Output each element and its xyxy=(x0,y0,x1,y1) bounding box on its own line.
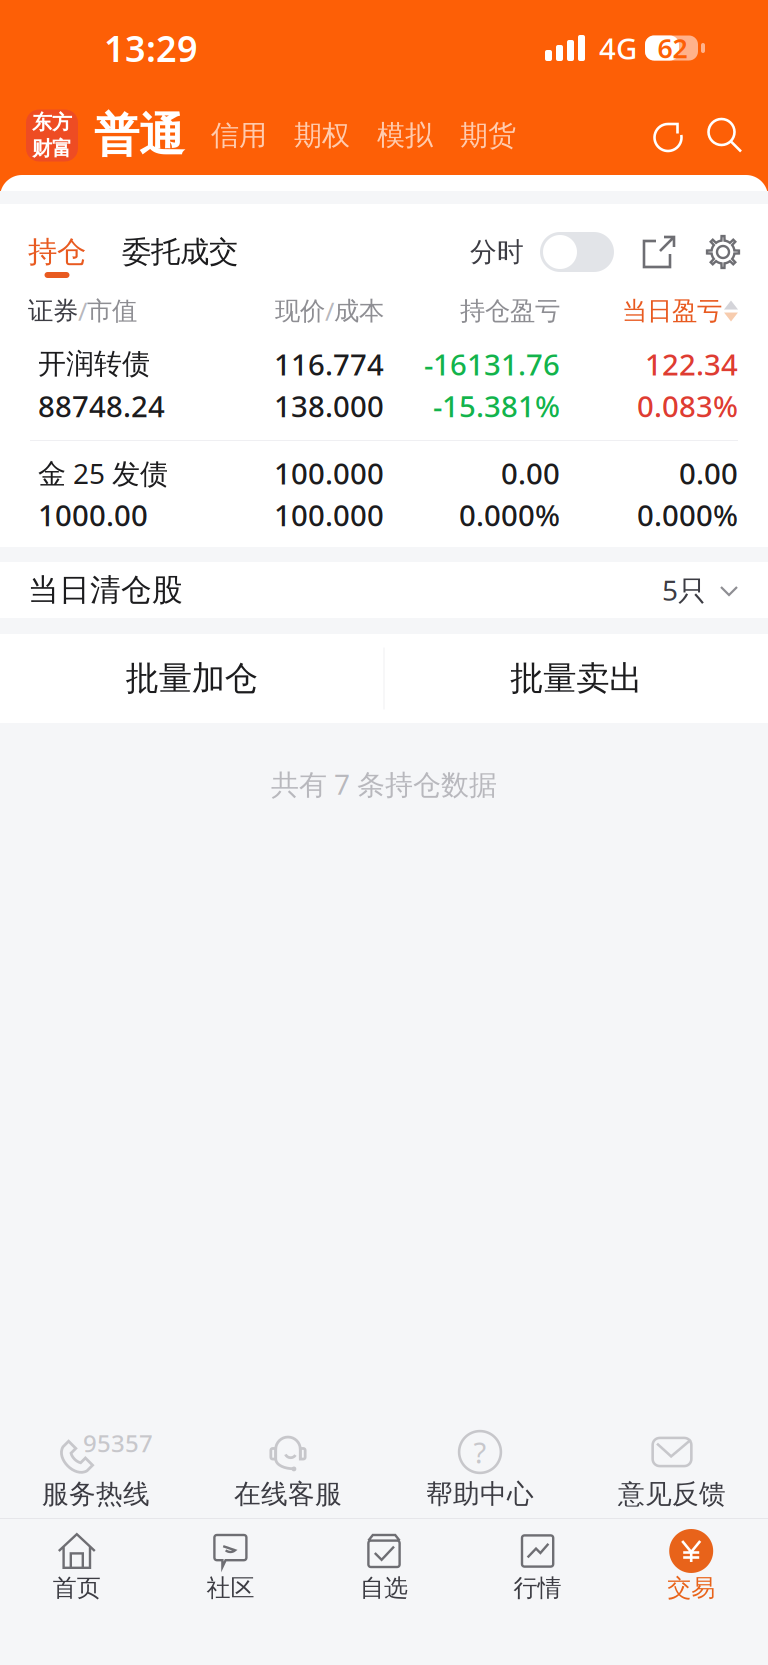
staticText: 自选 xyxy=(360,1573,408,1603)
staticText: 市值 xyxy=(87,295,137,327)
staticText: 行情 xyxy=(514,1573,562,1603)
staticText: 13:29 xyxy=(104,24,198,72)
staticText: 现价 xyxy=(275,295,325,327)
staticText: / xyxy=(325,294,334,328)
staticText: ? xyxy=(473,1432,486,1471)
staticText: 88748.24 xyxy=(38,386,165,425)
staticText: 首页 xyxy=(53,1573,101,1603)
button[interactable]: 交易 xyxy=(614,1525,768,1607)
button[interactable]: 社区 xyxy=(154,1525,307,1607)
staticText: -15.381% xyxy=(433,386,560,425)
staticText: 5只 xyxy=(662,571,706,609)
staticText: 138.000 xyxy=(274,386,384,425)
staticText: 共有 7 条持仓数据 xyxy=(271,765,497,803)
button[interactable]: 批量卖出 xyxy=(384,634,768,723)
staticText: 在线客服 xyxy=(234,1477,342,1511)
button[interactable]: 行情 xyxy=(461,1525,614,1607)
button[interactable]: 金 25 发债 xyxy=(0,441,768,547)
staticText: 100.000 xyxy=(274,453,384,492)
staticText: 当日盈亏 xyxy=(622,295,722,327)
staticText: 期货 xyxy=(460,118,516,153)
staticText: 意见反馈 xyxy=(618,1477,726,1511)
staticText: 当日清仓股 xyxy=(28,571,183,609)
button[interactable]: 批量加仓 xyxy=(0,634,383,723)
button[interactable]: Refresh xyxy=(650,116,686,154)
staticText: 4G xyxy=(599,28,637,67)
staticText: 帮助中心 xyxy=(426,1477,534,1511)
staticText: / xyxy=(78,294,87,328)
button[interactable]: 95357 xyxy=(0,1418,192,1518)
button[interactable]: Search xyxy=(686,116,744,154)
button[interactable]: 持仓 xyxy=(0,214,86,278)
staticText: 122.34 xyxy=(645,344,738,383)
button[interactable]: 自选 xyxy=(307,1525,461,1607)
staticText: 信用 xyxy=(211,118,267,153)
staticText: 期权 xyxy=(294,118,350,153)
staticText: 财富 xyxy=(32,136,72,161)
staticText: 95357 xyxy=(83,1427,153,1459)
button[interactable]: Intraday toggle xyxy=(524,214,614,272)
staticText: 0.000% xyxy=(637,495,738,534)
staticText: 成本 xyxy=(334,295,384,327)
staticText: 0.083% xyxy=(637,386,738,425)
button[interactable]: 委托成交 xyxy=(86,214,238,272)
staticText: 东方 xyxy=(32,110,72,135)
staticText: 持仓 xyxy=(28,233,86,270)
staticText: 开润转债 xyxy=(38,346,150,382)
button[interactable]: 当日清仓股 xyxy=(0,562,768,618)
staticText: -16131.76 xyxy=(424,344,560,383)
staticText: 证券 xyxy=(28,295,78,327)
staticText: 模拟 xyxy=(377,118,433,153)
staticText: 普通 xyxy=(94,107,184,164)
staticText: 金 25 发债 xyxy=(38,454,168,492)
staticText: 批量卖出 xyxy=(510,657,642,699)
staticText: 服务热线 xyxy=(42,1477,150,1511)
staticText: 社区 xyxy=(206,1573,254,1603)
button[interactable]: ? xyxy=(384,1418,576,1518)
button[interactable]: 首页 xyxy=(0,1525,154,1607)
button[interactable]: Settings xyxy=(678,214,742,271)
staticText: 持仓盈亏 xyxy=(460,295,560,327)
staticText: 委托成交 xyxy=(122,233,238,270)
staticText: 0.000% xyxy=(459,495,560,534)
button[interactable]: 开润转债 xyxy=(0,330,768,440)
button[interactable]: Share xyxy=(614,214,678,271)
staticText: 116.774 xyxy=(274,344,384,383)
staticText: 交易 xyxy=(667,1573,715,1603)
staticText: 批量加仓 xyxy=(126,657,258,699)
button[interactable]: 在线客服 xyxy=(192,1418,384,1518)
staticText: 100.000 xyxy=(274,495,384,534)
staticText: 0.00 xyxy=(501,453,560,492)
staticText: 0.00 xyxy=(679,453,738,492)
staticText: 分时 xyxy=(470,235,524,269)
staticText: 1000.00 xyxy=(38,495,148,534)
button[interactable]: 意见反馈 xyxy=(576,1418,768,1518)
staticText: 62 xyxy=(657,30,687,66)
